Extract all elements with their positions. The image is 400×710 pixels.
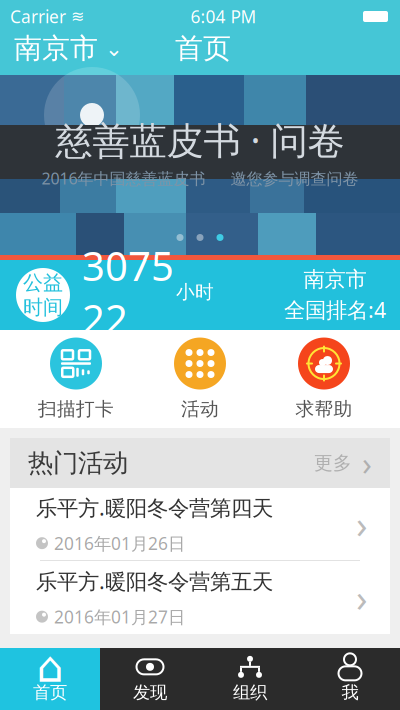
staticText: Carrier xyxy=(10,5,66,28)
button[interactable]: 我 xyxy=(300,648,400,710)
button[interactable]: 热门活动 xyxy=(10,438,390,488)
button[interactable]: 乐平方.暖阳冬令营第四天 xyxy=(10,488,390,561)
button[interactable]: 扫描打卡 xyxy=(28,334,124,424)
staticText: 活动 xyxy=(181,397,219,420)
staticText: 我 xyxy=(341,682,358,703)
staticText: 全国排名:4 xyxy=(284,295,386,324)
button[interactable]: 首页 xyxy=(167,27,239,69)
staticText: 扫描打卡 xyxy=(38,397,114,420)
staticText: ⌄ xyxy=(105,36,123,61)
staticText: 乐平方.暖阳冬令营第四天 xyxy=(36,493,273,522)
staticText: 时间 xyxy=(23,295,63,320)
button[interactable]: 南京市 xyxy=(0,27,137,69)
button[interactable]: 乐平方.暖阳冬令营第五天 xyxy=(10,561,390,634)
staticText: 公益 xyxy=(23,270,63,295)
staticText: 更多 xyxy=(314,451,352,474)
staticText: 6:04 PM xyxy=(190,5,256,28)
staticText: 首页 xyxy=(33,682,67,703)
button[interactable]: 求帮助 xyxy=(276,334,372,424)
staticText: 慈善蓝皮书 · 问卷 xyxy=(55,115,344,165)
button[interactable]: 组织 xyxy=(200,648,300,710)
staticText: 组织 xyxy=(233,682,267,703)
button[interactable]: ⌂ xyxy=(0,648,100,710)
staticText: 求帮助 xyxy=(295,397,352,420)
staticText: 热门活动 xyxy=(28,447,128,478)
staticText: 307522 xyxy=(82,239,174,345)
staticText: 乐平方.暖阳冬令营第五天 xyxy=(36,567,273,595)
staticText: › xyxy=(356,573,368,622)
staticText: › xyxy=(362,442,372,484)
button[interactable]: 发现 xyxy=(100,648,200,710)
staticText: 2016年01月26日 xyxy=(54,532,185,555)
button[interactable]: 慈善蓝皮书问卷 banner xyxy=(0,75,400,255)
staticText: 首页 xyxy=(175,31,231,66)
staticText: ⌂ xyxy=(36,643,63,691)
staticText: ≋ xyxy=(71,7,84,26)
staticText: 南京市 xyxy=(14,31,98,66)
staticText: 发现 xyxy=(133,682,167,703)
button[interactable]: 活动 xyxy=(152,334,248,424)
staticText: 2016年中国慈善蓝皮书 邀您参与调查问卷 xyxy=(41,168,358,189)
staticText: 南京市 xyxy=(303,266,366,292)
staticText: 2016年01月27日 xyxy=(54,605,185,628)
staticText: › xyxy=(356,499,368,549)
staticText: 小时 xyxy=(176,280,214,303)
